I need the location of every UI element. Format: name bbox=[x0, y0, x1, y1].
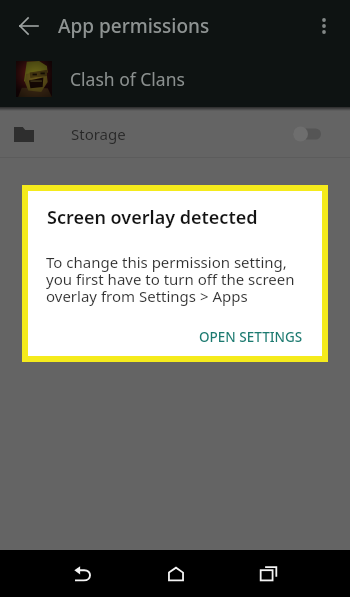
button[interactable]: Storage bbox=[0, 111, 350, 157]
button[interactable]: OPEN SETTINGS bbox=[193, 321, 309, 353]
button[interactable]: Navigate up bbox=[14, 11, 44, 41]
button[interactable]: Home bbox=[129, 550, 222, 597]
button[interactable]: Storage permission toggle bbox=[293, 124, 321, 144]
staticText: Clash of Clans bbox=[70, 67, 185, 91]
staticText: Screen overlay detected bbox=[47, 205, 258, 230]
staticText: App permissions bbox=[58, 13, 210, 39]
button[interactable]: Back bbox=[36, 550, 129, 597]
button[interactable]: More options bbox=[308, 10, 340, 42]
button[interactable]: Recent apps bbox=[222, 550, 315, 597]
staticText: OPEN SETTINGS bbox=[199, 328, 303, 346]
staticText: Storage bbox=[71, 124, 126, 144]
staticText: To change this permission setting, you f… bbox=[46, 252, 295, 307]
